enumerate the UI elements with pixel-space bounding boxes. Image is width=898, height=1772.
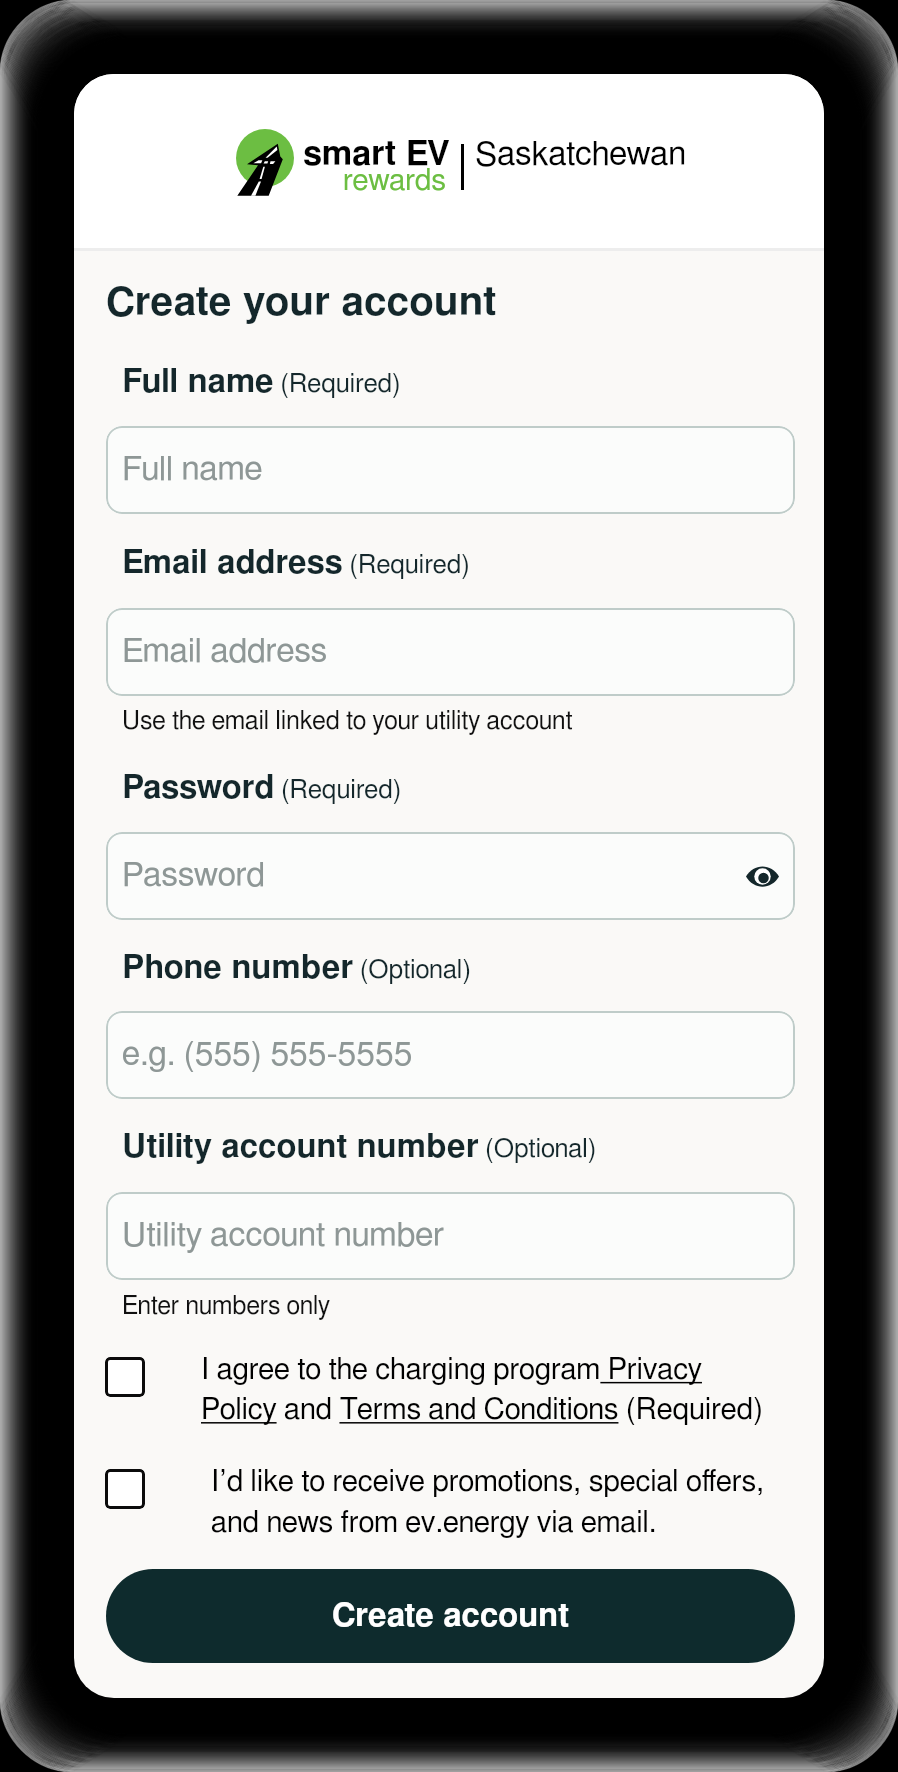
staticText: Utility account number (Optional) [122,1131,597,1164]
staticText: smart EV [303,137,450,171]
staticText: I agree to the charging program Privacy … [201,1355,776,1425]
button[interactable]: Email address [106,608,795,696]
staticText: rewards [343,166,446,196]
button[interactable]: Password [106,832,795,920]
staticText: Create your account [106,283,497,324]
staticText: Full name (Required) [122,366,401,399]
staticText: Email address (Required) [122,547,470,580]
staticText: Use the email linked to your utility acc… [122,709,573,734]
button[interactable]: I’d like to receive promotions, special … [106,1469,795,1540]
staticText: Password [122,859,266,893]
staticText: Create account [332,1600,570,1633]
button[interactable]: I agree to the charging program Privacy … [106,1357,795,1427]
staticText: Email address [122,635,328,669]
staticText: Saskatchewan [475,138,687,171]
staticText: Full name [122,453,263,487]
button[interactable]: Utility account number [106,1192,795,1280]
staticText: I’d like to receive promotions, special … [211,1467,795,1538]
button[interactable]: Create account [106,1569,795,1663]
button[interactable]: Show password [739,853,785,899]
staticText: Password (Required) [122,772,402,805]
staticText: e.g. (555) 555-5555 [122,1038,413,1072]
staticText: Phone number (Optional) [122,952,472,985]
button[interactable]: Full name [106,426,795,514]
button[interactable]: e.g. (555) 555-5555 [106,1011,795,1099]
staticText: Enter numbers only [122,1294,331,1319]
staticText: Utility account number [122,1219,445,1253]
